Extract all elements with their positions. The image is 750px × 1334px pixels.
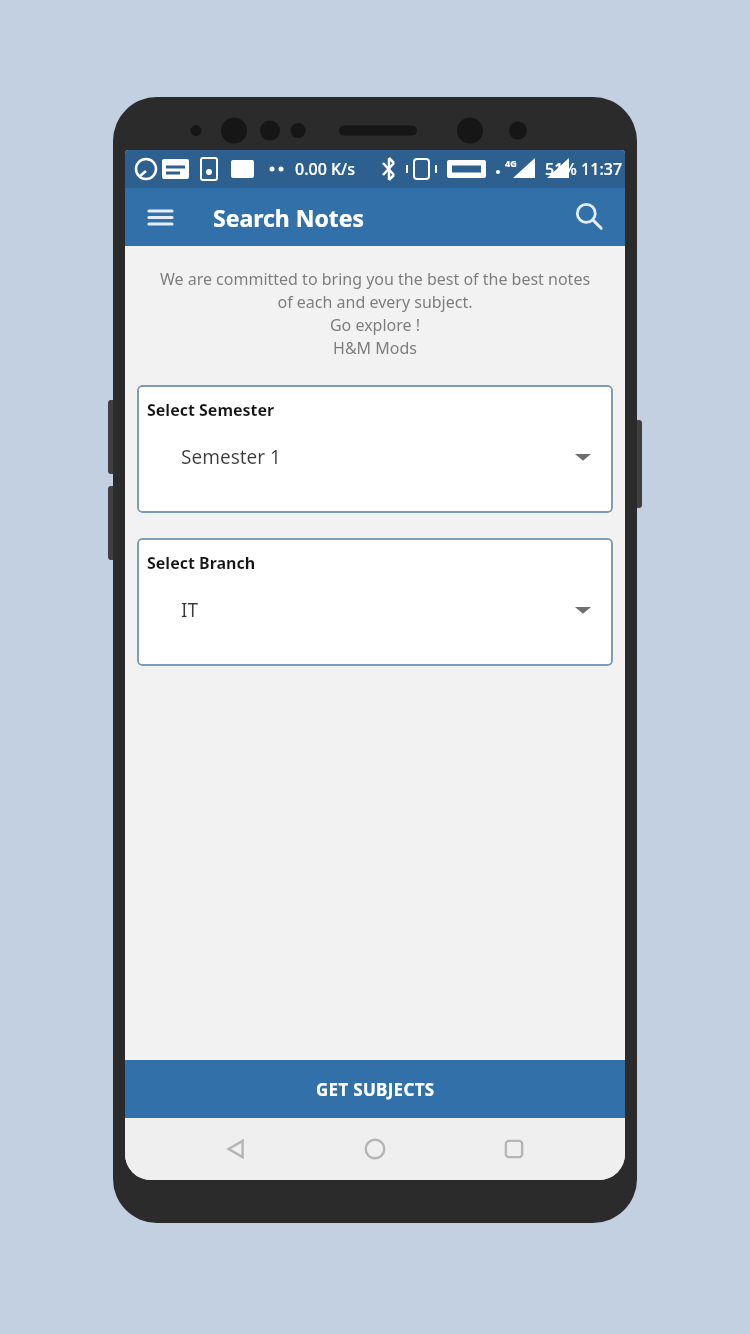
button[interactable]: Recent apps: [486, 1121, 542, 1177]
staticText: 0.00 K/s: [295, 158, 356, 180]
staticText: We are committed to bring you the best o…: [135, 268, 615, 359]
staticText: GET SUBJECTS: [316, 1078, 435, 1101]
button[interactable]: Select Semester: [137, 385, 613, 513]
button[interactable]: Open navigation menu: [139, 196, 181, 238]
button[interactable]: Search: [565, 193, 613, 241]
staticText: Semester 1: [181, 444, 281, 470]
button[interactable]: Back: [208, 1121, 264, 1177]
button[interactable]: GET SUBJECTS: [125, 1060, 625, 1118]
staticText: 4G: [505, 157, 517, 169]
staticText: 51% 11:37: [545, 158, 623, 180]
button[interactable]: Select Branch: [137, 538, 613, 666]
staticText: Select Semester: [147, 399, 275, 421]
staticText: Select Branch: [147, 552, 256, 574]
staticText: Search Notes: [213, 202, 365, 233]
staticText: IT: [181, 597, 199, 623]
button[interactable]: Home: [347, 1121, 403, 1177]
